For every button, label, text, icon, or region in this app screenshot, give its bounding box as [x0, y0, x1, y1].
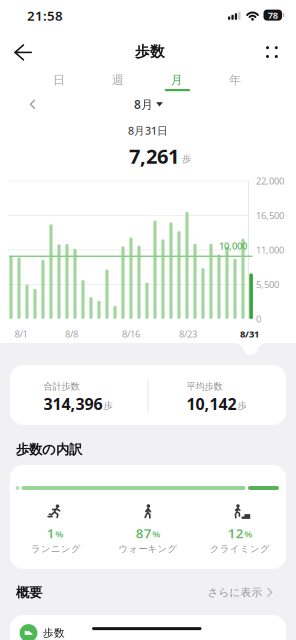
staticText: 月	[171, 73, 183, 87]
staticText: 5,500	[256, 278, 279, 291]
staticText: 年	[229, 73, 241, 87]
staticText: 11,000	[256, 244, 284, 256]
button[interactable]: 8月	[134, 96, 163, 112]
button[interactable]: さらに表示	[207, 586, 272, 599]
staticText: 歩数	[43, 626, 65, 639]
button[interactable]: 歩数	[10, 615, 286, 640]
staticText: %	[244, 528, 252, 540]
staticText: 1	[47, 524, 55, 542]
button[interactable]	[14, 44, 32, 60]
staticText: 7,261	[129, 143, 179, 169]
staticText: 78	[268, 9, 278, 21]
button[interactable]: 日	[37, 70, 81, 90]
staticText: 歩	[103, 400, 112, 411]
button[interactable]: 年	[213, 70, 257, 90]
staticText: 8/31	[240, 328, 259, 340]
staticText: 10,142	[186, 393, 236, 414]
staticText: ランニング	[31, 543, 81, 555]
staticText: 10,000	[219, 240, 247, 252]
staticText: 21:58	[27, 7, 63, 24]
button[interactable]	[265, 45, 279, 59]
staticText: 合計歩数	[43, 381, 79, 392]
staticText: 平均歩数	[186, 381, 222, 392]
staticText: 87	[136, 524, 152, 542]
button[interactable]	[30, 100, 36, 109]
staticText: 8月	[134, 96, 153, 112]
staticText: %	[152, 528, 160, 540]
button[interactable]: 週	[96, 70, 140, 90]
staticText: 12	[228, 524, 244, 542]
staticText: 8月31日	[128, 123, 168, 138]
staticText: 週	[112, 73, 124, 87]
staticText: 8/8	[65, 328, 78, 340]
staticText: 0	[256, 313, 261, 325]
staticText: 日	[53, 73, 65, 87]
staticText: 歩	[237, 400, 246, 411]
staticText: 歩	[182, 153, 191, 165]
staticText: 16,500	[256, 209, 284, 222]
button[interactable]: 月	[155, 70, 199, 90]
staticText: 概要	[16, 584, 42, 601]
staticText: ウォーキング	[118, 543, 177, 555]
staticText: 22,000	[256, 175, 284, 187]
staticText: 8/23	[179, 328, 197, 340]
staticText: 8/16	[122, 328, 140, 340]
staticText: クライミング	[210, 543, 270, 555]
staticText: %	[55, 528, 63, 540]
staticText: 歩数	[135, 42, 165, 60]
staticText: 歩数の内訳	[16, 441, 82, 458]
staticText: 8/1	[14, 328, 27, 340]
staticText: 314,396	[43, 393, 102, 414]
staticText: さらに表示	[207, 586, 262, 599]
